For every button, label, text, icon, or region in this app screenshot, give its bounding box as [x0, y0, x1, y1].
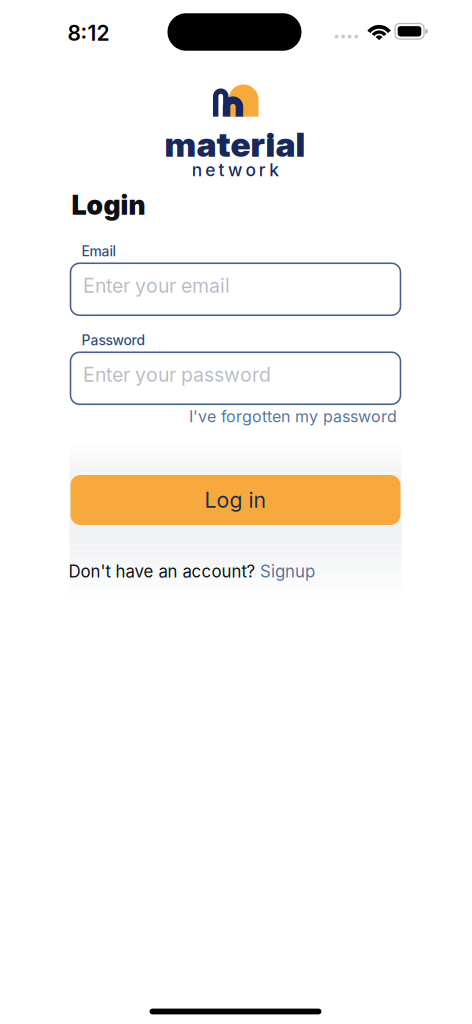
staticText: o [245, 160, 255, 180]
staticText: material [164, 124, 305, 165]
staticText: Password [81, 332, 145, 349]
staticText: Enter your password [83, 363, 271, 386]
staticText: I've forgotten my password [189, 407, 397, 426]
staticText: Login [71, 189, 145, 221]
staticText: w [228, 160, 242, 180]
staticText: n [192, 160, 202, 180]
staticText: Email [81, 243, 115, 260]
staticText: e [205, 160, 215, 180]
staticText: Don't have an account? [68, 561, 255, 582]
staticText: k [269, 160, 279, 180]
staticText: 8:12 [67, 20, 109, 46]
staticText: Signup [260, 561, 315, 582]
staticText: Log in [204, 487, 266, 513]
staticText: Enter your email [83, 274, 230, 297]
staticText: r [259, 160, 266, 180]
staticText: t [219, 160, 225, 180]
